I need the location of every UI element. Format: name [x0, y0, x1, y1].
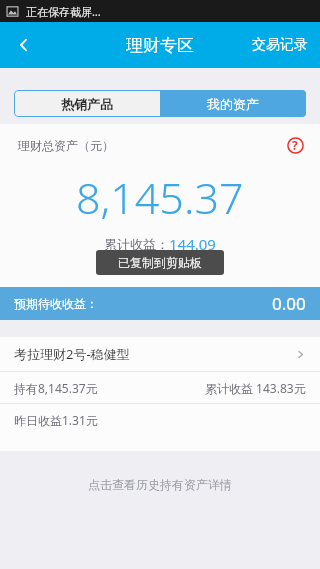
staticText: 考拉理财2号-稳健型	[14, 345, 130, 363]
staticText: 理财总资产（元）	[18, 138, 114, 153]
staticText: 持有8,145.37元	[14, 380, 98, 396]
staticText: 累计收益：	[104, 236, 169, 252]
staticText: 已复制到剪贴板	[118, 255, 202, 270]
button[interactable]: Back	[0, 22, 48, 68]
button[interactable]: 点击查看历史持有资产详情	[0, 477, 320, 492]
button[interactable]: 我的资产	[160, 90, 306, 117]
staticText: 144.09	[169, 234, 216, 254]
button[interactable]: 预期待收收益：	[14, 287, 306, 320]
button[interactable]: Help	[282, 132, 308, 158]
staticText: 昨日收益1.31元	[14, 412, 98, 428]
button[interactable]: 热销产品	[14, 90, 160, 117]
button[interactable]: 交易记录	[240, 22, 320, 68]
staticText: ?	[292, 137, 298, 153]
button[interactable]: 考拉理财2号-稳健型	[0, 337, 320, 371]
staticText: 0.00	[272, 292, 306, 315]
staticText: 理财专区	[126, 35, 194, 56]
staticText: 热销产品	[61, 96, 113, 112]
staticText: 累计收益 143.83元	[205, 380, 306, 396]
staticText: 8,145.37	[76, 168, 244, 227]
staticText: 我的资产	[207, 96, 259, 112]
staticText: 预期待收收益：	[14, 296, 98, 311]
staticText: 交易记录	[252, 36, 308, 54]
staticText: 正在保存截屏…	[26, 4, 101, 19]
